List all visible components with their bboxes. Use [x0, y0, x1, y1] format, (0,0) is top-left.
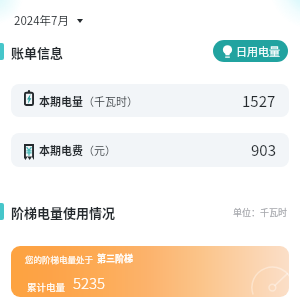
staticText: 本期电费 — [39, 142, 83, 158]
staticText: 您的阶梯电量处于 — [25, 253, 94, 265]
staticText: （千瓦时） — [83, 93, 138, 109]
staticText: 单位：千瓦时 — [233, 206, 288, 219]
staticText: 2024年7月 — [14, 12, 69, 29]
button[interactable]: 本期电费 — [11, 133, 289, 167]
staticText: 日用电量 — [236, 43, 280, 59]
button[interactable]: 日用电量 — [213, 40, 288, 62]
button[interactable]: 您的阶梯电量处于 — [11, 246, 289, 297]
staticText: 1527 — [242, 90, 276, 112]
staticText: 累计电量 — [27, 280, 66, 294]
staticText: 第三阶梯 — [97, 252, 134, 265]
staticText: （元） — [83, 142, 116, 158]
button[interactable]: 本期电量 — [11, 84, 289, 117]
other: 选择月份 — [77, 19, 83, 23]
staticText: 本期电量 — [39, 93, 83, 109]
staticText: 903 — [251, 139, 276, 161]
staticText: 阶梯电量使用情况 — [11, 203, 116, 220]
button[interactable]: 账单信息 — [0, 43, 64, 60]
staticText: 账单信息 — [11, 43, 64, 60]
button[interactable]: 阶梯电量使用情况 — [0, 203, 116, 220]
button[interactable]: 2024年7月 — [14, 12, 83, 29]
staticText: 5235 — [73, 272, 106, 294]
